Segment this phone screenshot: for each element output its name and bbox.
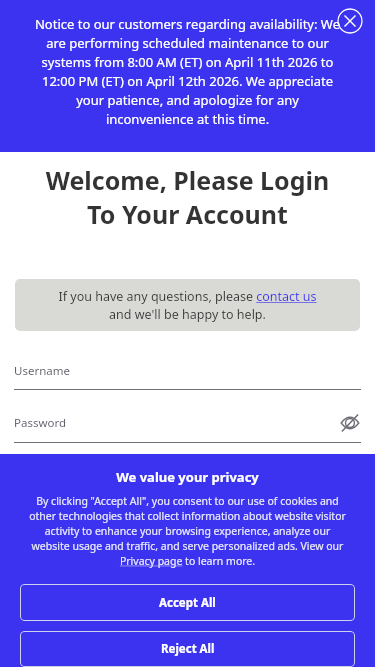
- button[interactable]: Accept All: [20, 584, 355, 621]
- staticText: We value your privacy: [116, 468, 259, 486]
- button[interactable]: Close notice: [337, 8, 363, 34]
- button[interactable]: Show password: [339, 412, 361, 434]
- staticText: Reject All: [161, 641, 215, 657]
- staticText: By clicking "Accept All", you consent to…: [26, 494, 349, 568]
- staticText: Username: [14, 363, 70, 379]
- staticText: Notice to our customers regarding availa…: [32, 15, 343, 128]
- staticText: If you have any questions, please contac…: [58, 288, 317, 323]
- staticText: Welcome, Please Login To Your Account: [16, 163, 359, 231]
- button[interactable]: Password: [14, 412, 361, 443]
- button[interactable]: Username: [14, 363, 361, 390]
- button[interactable]: Reject All: [20, 631, 355, 667]
- staticText: Password: [14, 415, 339, 431]
- staticText: Accept All: [159, 595, 216, 611]
